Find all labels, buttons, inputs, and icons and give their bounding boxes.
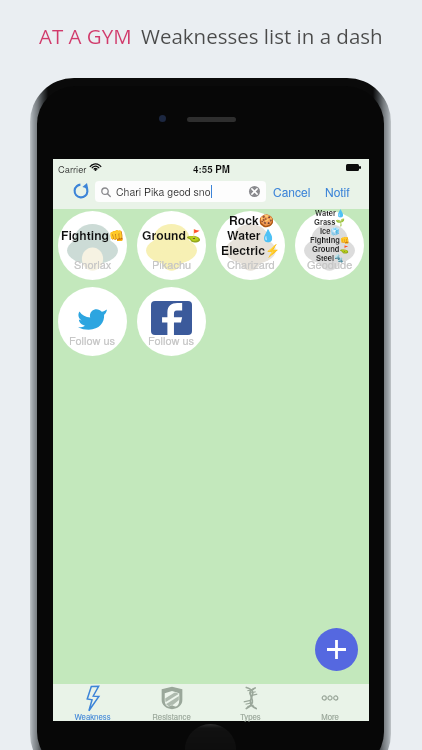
staticText: More: [321, 711, 339, 722]
staticText: Weakness: [74, 711, 111, 722]
staticText: Steel🔩: [316, 252, 344, 263]
staticText: Weaknesses list in a dash: [141, 22, 383, 50]
button[interactable]: Fighting👊: [58, 211, 127, 280]
staticText: Ground⛳: [312, 243, 349, 254]
staticText: Resistance: [152, 711, 191, 722]
staticText: AT A GYM: [39, 22, 132, 50]
staticText: Geodude: [307, 256, 353, 272]
button[interactable]: Cancel: [273, 181, 311, 202]
staticText: Charizard: [227, 256, 275, 272]
button[interactable]: Refresh: [69, 179, 93, 203]
staticText: Follow us: [69, 332, 116, 348]
button[interactable]: Add: [315, 628, 358, 671]
button[interactable]: Notif: [325, 181, 350, 202]
staticText: Carrier: [58, 162, 87, 175]
button[interactable]: Chari Pika geod sno: [95, 181, 266, 202]
button[interactable]: Types: [211, 684, 290, 721]
staticText: Ice🧊: [320, 225, 341, 236]
staticText: Notif: [325, 183, 350, 200]
button[interactable]: More: [290, 684, 369, 721]
staticText: Fighting👊: [310, 234, 350, 245]
button[interactable]: Follow us on Facebook: [137, 287, 206, 356]
staticText: Water💧: [227, 226, 276, 243]
staticText: Follow us: [148, 332, 195, 348]
staticText: Cancel: [273, 183, 311, 200]
button[interactable]: Ground⛳: [137, 211, 206, 280]
staticText: Rock🍪: [229, 211, 274, 228]
staticText: Snorlax: [74, 256, 112, 272]
staticText: Types: [240, 711, 261, 722]
staticText: Pikachu: [152, 256, 192, 272]
staticText: Electric⚡: [221, 241, 281, 258]
staticText: Fighting👊: [61, 226, 125, 243]
staticText: 4:55 PM: [193, 162, 231, 176]
button[interactable]: Water💧: [295, 211, 364, 280]
button[interactable]: Resistance: [132, 684, 211, 721]
staticText: Chari Pika geod sno: [116, 184, 211, 199]
button[interactable]: Follow us on Twitter: [58, 287, 127, 356]
button[interactable]: Weakness: [53, 684, 132, 721]
staticText: Ground⛳: [142, 226, 202, 243]
staticText: Water💧: [315, 207, 346, 218]
staticText: Grass🌱: [314, 216, 346, 227]
button[interactable]: Rock🍪: [216, 211, 285, 280]
